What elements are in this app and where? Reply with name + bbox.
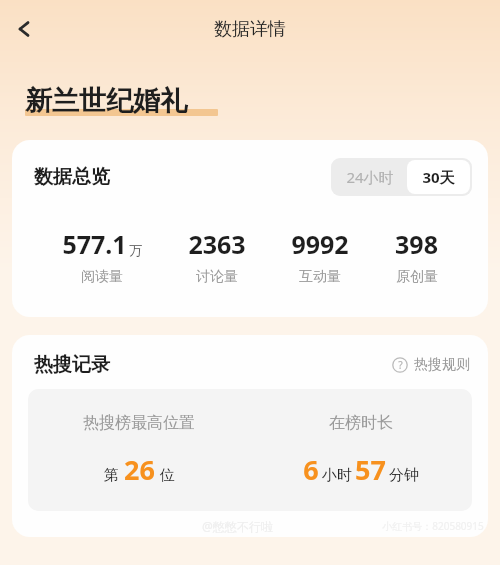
button[interactable]: Back — [2, 7, 46, 51]
staticText: 分钟 — [389, 466, 419, 485]
staticText: 位 — [160, 466, 175, 485]
staticText: 数据总览 — [34, 165, 110, 189]
staticText: 小时 — [322, 466, 352, 485]
staticText: 万 — [129, 242, 142, 258]
staticText: 2363 — [188, 227, 246, 261]
staticText: 第 — [104, 466, 119, 485]
staticText: 原创量 — [396, 268, 438, 286]
staticText: 30天 — [422, 167, 455, 187]
button[interactable]: 30天 — [407, 160, 470, 194]
staticText: 577.1 — [62, 227, 127, 261]
staticText: 6 — [303, 451, 319, 488]
staticText: 26 — [124, 451, 155, 488]
staticText: 热搜记录 — [34, 353, 110, 377]
staticText: 9992 — [291, 227, 349, 261]
staticText: 热搜榜最高位置 — [83, 413, 195, 433]
staticText: 在榜时长 — [329, 413, 393, 433]
staticText: 数据详情 — [214, 18, 286, 41]
button[interactable]: ? — [390, 354, 472, 376]
staticText: 互动量 — [299, 268, 341, 286]
staticText: 57 — [355, 451, 386, 488]
staticText: 热搜规则 — [414, 356, 470, 374]
staticText: 讨论量 — [196, 268, 238, 286]
staticText: 小红书号：820580915 — [382, 519, 484, 533]
button[interactable]: 24小时 — [333, 160, 407, 194]
staticText: 24小时 — [346, 167, 394, 187]
staticText: 398 — [395, 227, 438, 261]
staticText: @憋憋不行啦 — [202, 518, 273, 534]
staticText: ? — [398, 358, 403, 372]
staticText: 新兰世纪婚礼 — [25, 84, 187, 118]
staticText: 阅读量 — [81, 268, 123, 286]
